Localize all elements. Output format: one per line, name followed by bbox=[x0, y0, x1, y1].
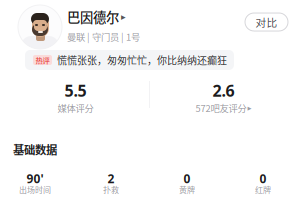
staticText: 5.5 bbox=[64, 80, 86, 101]
staticText: 黄牌 bbox=[179, 184, 195, 195]
staticText: 热评 bbox=[35, 55, 49, 65]
staticText: 2.6 bbox=[212, 80, 234, 101]
staticText: 曼联 | 守门员 | 1号 bbox=[67, 30, 140, 43]
staticText: ▸ bbox=[121, 11, 126, 22]
staticText: 90' bbox=[26, 170, 43, 186]
staticText: 0 bbox=[183, 170, 190, 186]
staticText: ▸ bbox=[247, 103, 251, 113]
staticText: 媒体评分 bbox=[57, 101, 93, 115]
button[interactable]: 2.6 bbox=[151, 80, 296, 115]
staticText: 慌慌张张，匆匆忙忙，你比纳纳还癫狂 bbox=[57, 53, 227, 67]
staticText: 扑救 bbox=[103, 184, 119, 195]
button[interactable]: 巴因德尔 bbox=[67, 7, 126, 26]
staticText: 572吧友评分 bbox=[195, 101, 246, 115]
button[interactable]: 热评 bbox=[25, 50, 234, 70]
button[interactable]: 对比 bbox=[245, 13, 288, 31]
staticText: 红牌 bbox=[255, 184, 271, 195]
staticText: 基础数据 bbox=[13, 141, 57, 157]
staticText: 巴因德尔 bbox=[67, 7, 119, 26]
staticText: 出场时间 bbox=[19, 184, 51, 195]
staticText: 0 bbox=[259, 170, 266, 186]
staticText: 对比 bbox=[255, 14, 277, 30]
staticText: 2 bbox=[107, 170, 114, 186]
